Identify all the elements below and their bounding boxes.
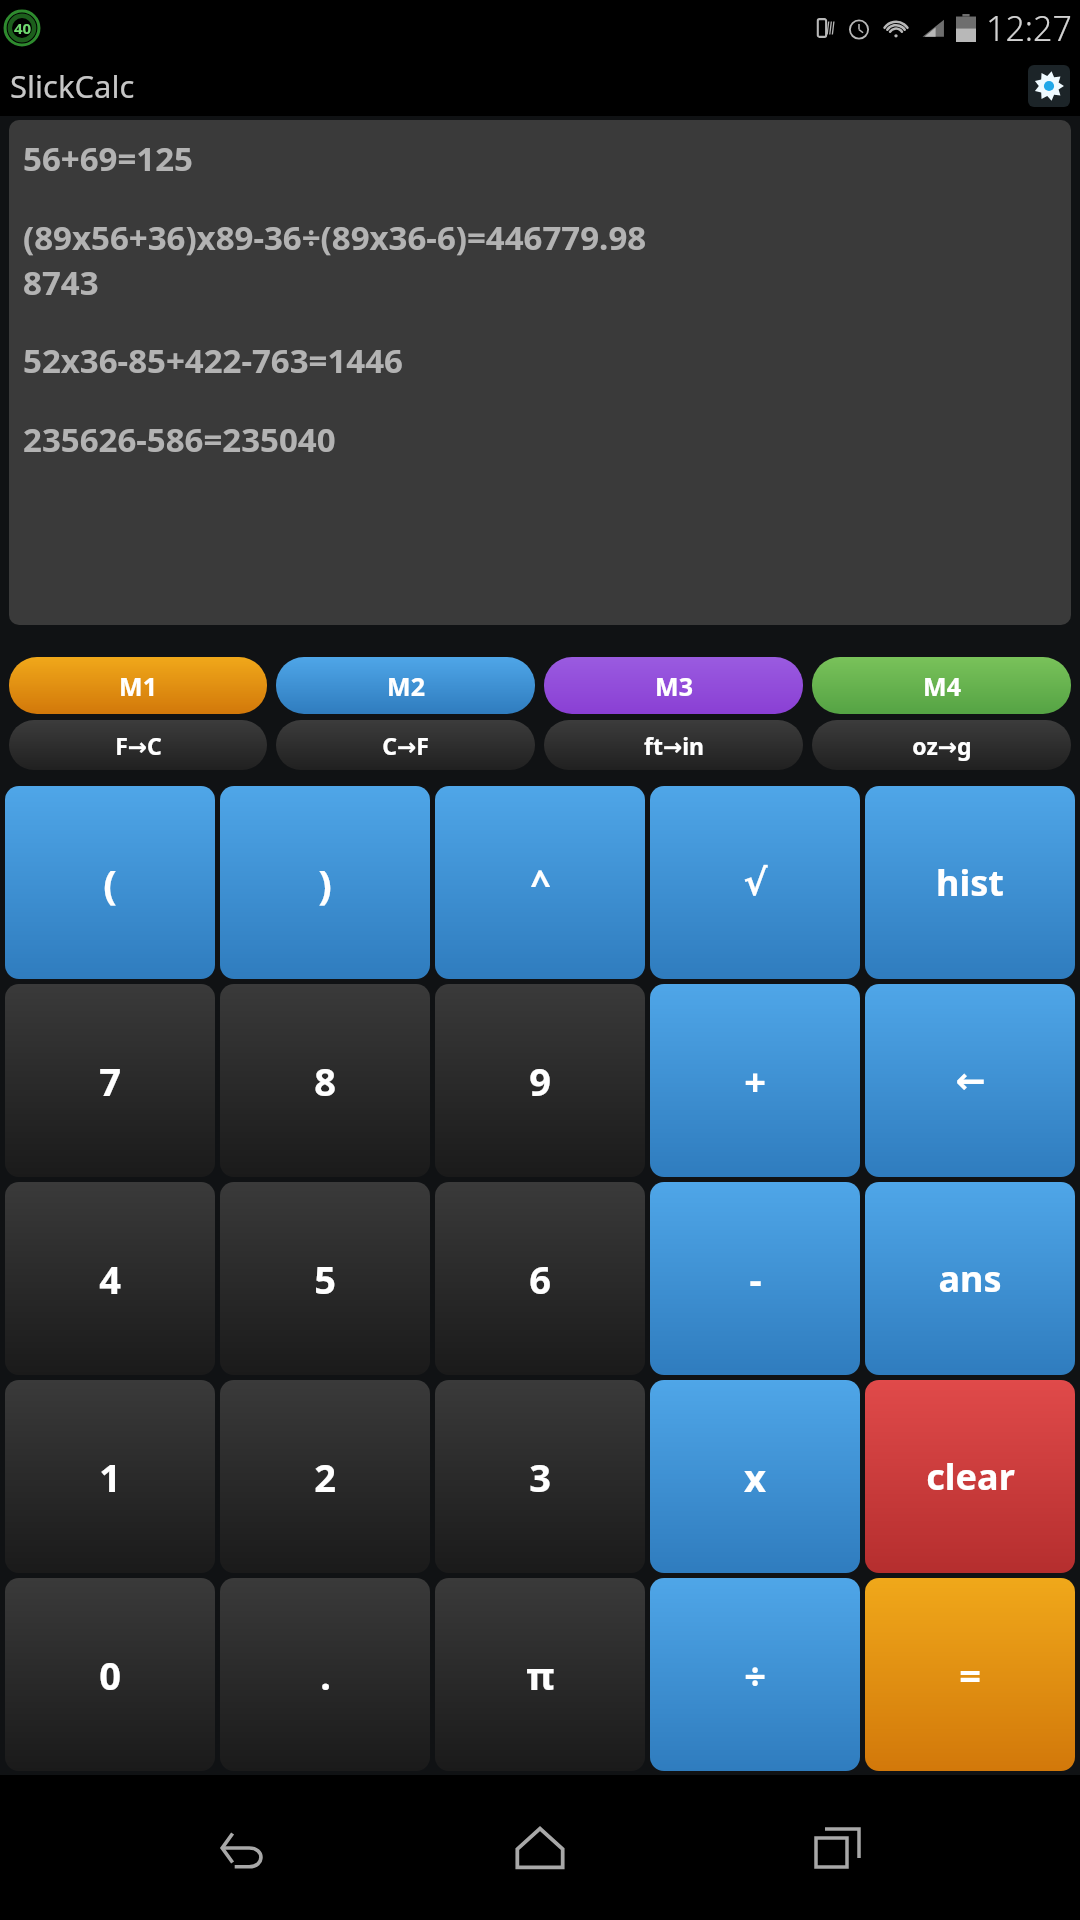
staticText: 4 bbox=[99, 1253, 121, 1305]
button[interactable]: - bbox=[650, 1182, 860, 1375]
staticText: π bbox=[526, 1649, 555, 1701]
staticText: ÷ bbox=[744, 1649, 766, 1701]
button[interactable]: 5 bbox=[220, 1182, 430, 1375]
staticText: 9 bbox=[529, 1055, 551, 1107]
button[interactable]: Recent apps bbox=[783, 1793, 893, 1903]
staticText: M4 bbox=[923, 669, 961, 703]
staticText: 40 bbox=[14, 18, 32, 38]
button[interactable]: x bbox=[650, 1380, 860, 1573]
staticText: 7 bbox=[99, 1055, 121, 1107]
staticText: 56+69=125 bbox=[23, 136, 193, 181]
staticText: 0 bbox=[99, 1649, 121, 1701]
button[interactable]: ÷ bbox=[650, 1578, 860, 1771]
button[interactable]: hist bbox=[865, 786, 1075, 979]
staticText: clear bbox=[926, 1452, 1015, 1501]
button[interactable]: Settings bbox=[1028, 65, 1070, 107]
button[interactable]: 56+69=125 bbox=[9, 120, 1071, 625]
staticText: M2 bbox=[387, 669, 425, 703]
staticText: ( bbox=[103, 856, 117, 910]
button[interactable]: M2 bbox=[276, 657, 535, 714]
staticText: 6 bbox=[529, 1253, 551, 1305]
button[interactable]: C→F bbox=[276, 720, 535, 770]
button[interactable]: ( bbox=[5, 786, 215, 979]
button[interactable]: 3 bbox=[435, 1380, 645, 1573]
button[interactable]: oz→g bbox=[812, 720, 1071, 770]
button[interactable]: 0 bbox=[5, 1578, 215, 1771]
button[interactable]: M4 bbox=[812, 657, 1071, 714]
staticText: ^ bbox=[530, 858, 551, 907]
button[interactable]: 8 bbox=[220, 984, 430, 1177]
button[interactable]: M3 bbox=[544, 657, 803, 714]
staticText: ans bbox=[938, 1254, 1002, 1303]
staticText: (89x56+36)x89-36÷(89x36-6)=446779.98 874… bbox=[23, 215, 647, 304]
staticText: ) bbox=[318, 856, 332, 910]
button[interactable]: clear bbox=[865, 1380, 1075, 1573]
button[interactable]: ft→in bbox=[544, 720, 803, 770]
button[interactable]: Home bbox=[485, 1793, 595, 1903]
button[interactable]: Backspace bbox=[865, 984, 1075, 1177]
button[interactable]: 2 bbox=[220, 1380, 430, 1573]
button[interactable]: ^ bbox=[435, 786, 645, 979]
staticText: 3 bbox=[529, 1451, 551, 1503]
staticText: 5 bbox=[314, 1253, 336, 1305]
button[interactable]: M1 bbox=[9, 657, 267, 714]
staticText: ← bbox=[955, 1060, 986, 1102]
button[interactable]: ) bbox=[220, 786, 430, 979]
staticText: 1 bbox=[99, 1451, 121, 1503]
staticText: 235626-586=235040 bbox=[23, 417, 336, 462]
button[interactable]: . bbox=[220, 1578, 430, 1771]
staticText: - bbox=[749, 1253, 762, 1305]
button[interactable]: F→C bbox=[9, 720, 267, 770]
button[interactable]: 4 bbox=[5, 1182, 215, 1375]
staticText: ft→in bbox=[644, 730, 704, 761]
staticText: SlickCalc bbox=[10, 65, 135, 107]
button[interactable]: π bbox=[435, 1578, 645, 1771]
staticText: oz→g bbox=[912, 730, 972, 761]
staticText: hist bbox=[936, 858, 1004, 907]
button[interactable]: Back bbox=[188, 1793, 298, 1903]
button[interactable]: 6 bbox=[435, 1182, 645, 1375]
button[interactable]: 1 bbox=[5, 1380, 215, 1573]
staticText: 52x36-85+422-763=1446 bbox=[23, 338, 403, 383]
staticText: √ bbox=[743, 862, 768, 904]
staticText: 2 bbox=[314, 1451, 336, 1503]
staticText: x bbox=[744, 1451, 766, 1503]
button[interactable]: 9 bbox=[435, 984, 645, 1177]
button[interactable]: = bbox=[865, 1578, 1075, 1771]
button[interactable]: √ bbox=[650, 786, 860, 979]
staticText: C→F bbox=[382, 730, 429, 761]
staticText: . bbox=[320, 1649, 331, 1701]
button[interactable]: 7 bbox=[5, 984, 215, 1177]
staticText: 12:27 bbox=[986, 5, 1072, 51]
button[interactable]: + bbox=[650, 984, 860, 1177]
staticText: = bbox=[959, 1649, 981, 1701]
staticText: + bbox=[744, 1055, 766, 1107]
staticText: 8 bbox=[314, 1055, 336, 1107]
staticText: M1 bbox=[119, 669, 157, 703]
staticText: F→C bbox=[115, 730, 162, 761]
button[interactable]: ans bbox=[865, 1182, 1075, 1375]
staticText: M3 bbox=[655, 669, 693, 703]
